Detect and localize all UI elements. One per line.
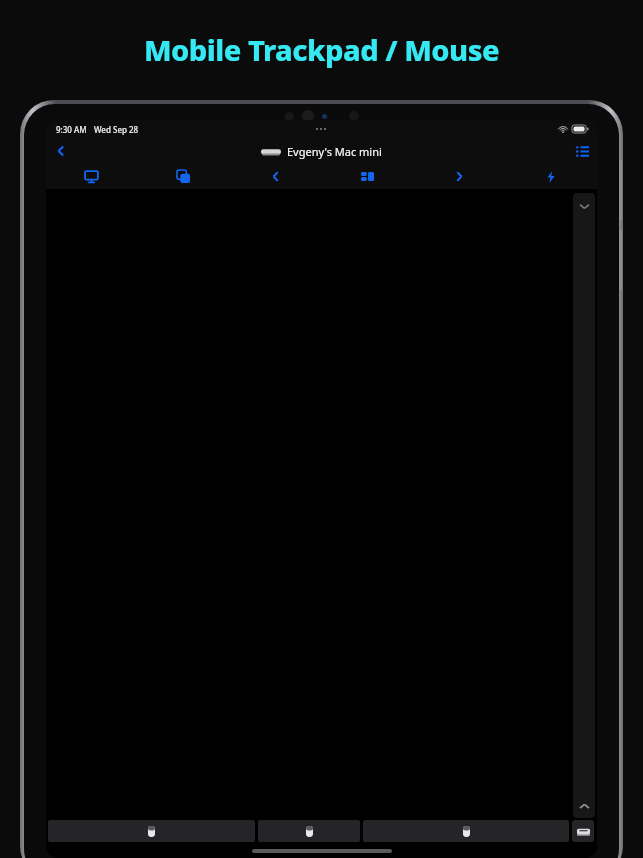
button[interactable]: Layout: [321, 164, 413, 189]
button[interactable]: Middle click: [258, 820, 360, 842]
button[interactable]: Collapse panel: [576, 198, 592, 214]
button[interactable]: Right click: [363, 820, 569, 842]
staticText: Mobile Trackpad / Mouse: [0, 30, 643, 69]
button[interactable]: Previous: [229, 164, 321, 189]
button[interactable]: Keyboard: [572, 820, 594, 842]
button[interactable]: Left click: [48, 820, 255, 842]
button[interactable]: Back: [46, 138, 76, 164]
button[interactable]: List: [567, 138, 597, 164]
staticText: Wed Sep 28: [94, 124, 139, 135]
button[interactable]: Next: [413, 164, 505, 189]
staticText: 9:30 AM: [56, 124, 87, 135]
staticText: Evgeny's Mac mini: [287, 144, 382, 159]
button[interactable]: Display: [46, 164, 137, 189]
button[interactable]: Screens: [137, 164, 229, 189]
button[interactable]: Scroll up: [576, 798, 592, 814]
button[interactable]: Power: [505, 164, 597, 189]
